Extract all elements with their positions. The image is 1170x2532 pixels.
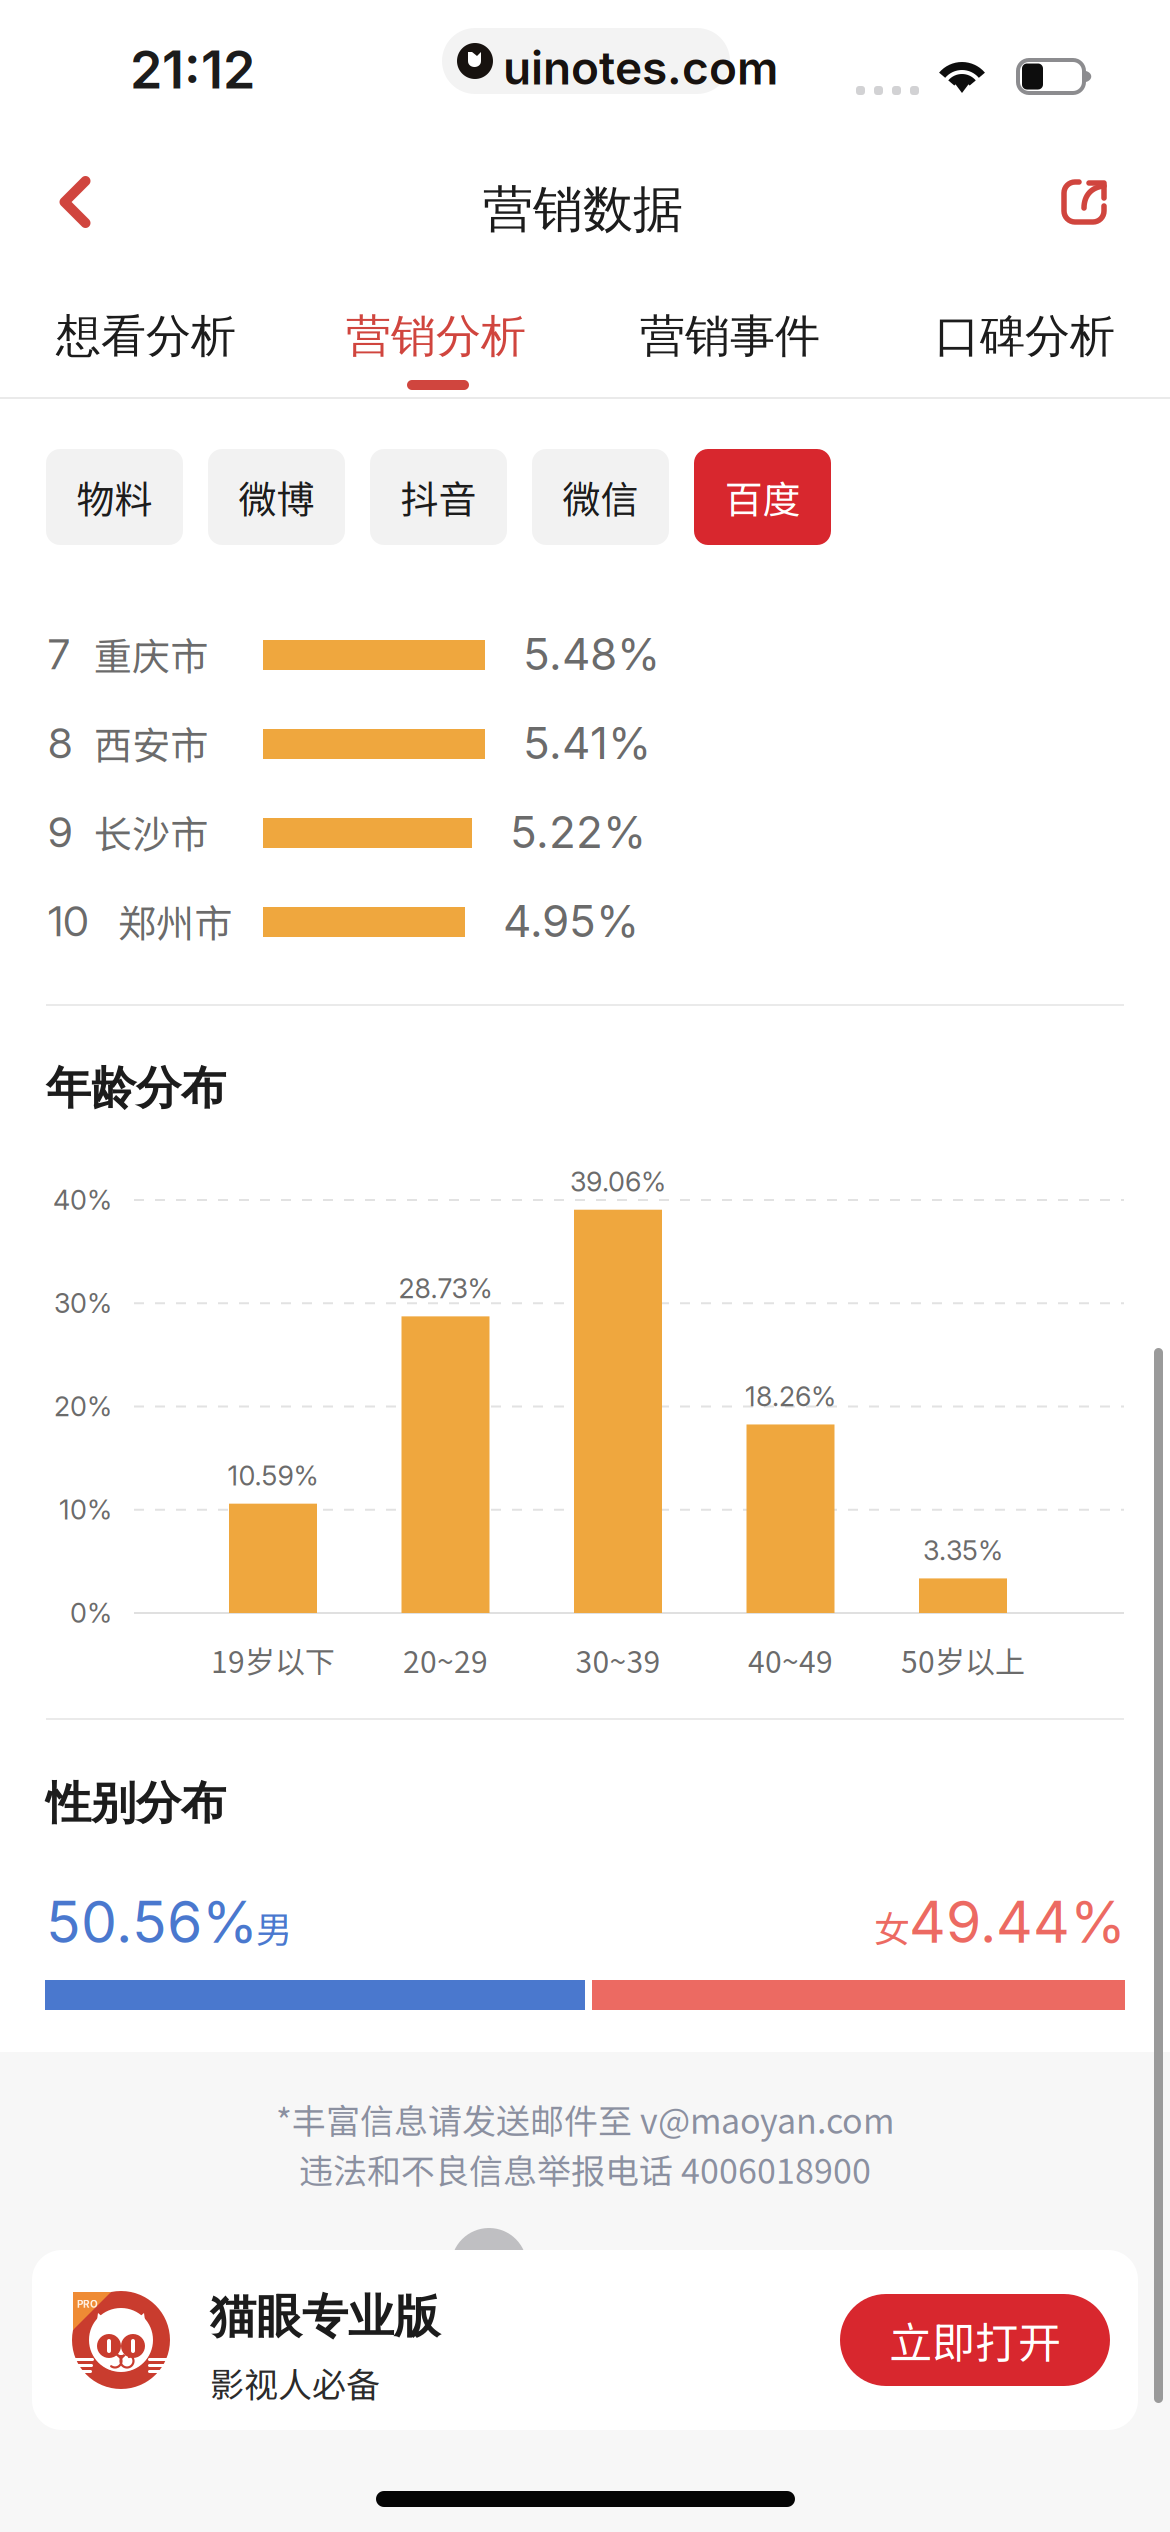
staticText: 郑州市 [118,893,232,948]
staticText: 女 [874,1901,910,1953]
staticText: 3.35% [923,1534,1003,1567]
staticText: 18.26% [745,1380,836,1413]
button[interactable]: 营销分析 [343,288,539,418]
staticText: 5.22% [510,805,646,859]
button[interactable]: Back [10,142,140,262]
staticText: 抖音 [400,469,476,524]
staticText: 19岁以下 [211,1638,335,1682]
staticText: 5.48% [523,627,660,681]
staticText: 20% [54,1390,112,1423]
staticText: 想看分析 [56,308,236,365]
button[interactable]: PRO [32,2250,1138,2430]
button[interactable]: 营销事件 [637,288,833,418]
staticText: 7 [48,629,70,679]
staticText: 物料 [76,469,152,524]
staticText: 男 [256,1901,292,1953]
staticText: 10 [48,896,89,946]
staticText: 营销分析 [346,308,526,365]
staticText: 年龄分布 [46,1060,226,1117]
button[interactable]: 微信 [532,449,669,545]
staticText: uinotes.com [503,40,778,96]
staticText: 28.73% [398,1272,492,1305]
staticText: 重庆市 [94,626,208,681]
staticText: 10% [59,1493,112,1526]
staticText: 口碑分析 [935,308,1115,365]
staticText: 5.41% [523,716,651,770]
staticText: 40% [53,1184,112,1216]
staticText: 39.06% [570,1165,666,1198]
staticText: 百度 [724,469,800,524]
staticText: 立即打开 [889,2309,1061,2371]
staticText: 8 [48,718,72,768]
staticText: 40~49 [748,1638,833,1682]
staticText: PRO [77,2298,98,2310]
staticText: 9 [48,807,73,857]
staticText: 50岁以上 [901,1638,1025,1682]
staticText: 猫眼专业版 [210,2288,440,2346]
staticText: 营销事件 [640,308,820,365]
staticText: 微信 [562,469,638,524]
button[interactable]: 百度 [694,449,831,545]
staticText: 西安市 [94,715,208,770]
staticText: 4.95% [503,894,639,948]
button[interactable]: 物料 [46,449,183,545]
staticText: 性别分布 [46,1775,226,1832]
staticText: 10.59% [227,1459,318,1492]
staticText: 影视人必备 [210,2358,380,2407]
staticText: 21:12 [130,38,255,101]
staticText: 长沙市 [94,804,208,859]
button[interactable]: 抖音 [370,449,507,545]
staticText: 50.56% [46,1887,258,1956]
staticText: *丰富信息请发送邮件至 v@maoyan.com [276,2094,894,2144]
staticText: 30% [54,1287,112,1320]
staticText: 20~29 [403,1638,488,1682]
staticText: 违法和不良信息举报电话 4006018900 [299,2144,871,2194]
button[interactable]: Share [1024,142,1144,262]
button[interactable]: 想看分析 [53,288,249,418]
staticText: 0% [70,1597,112,1629]
button[interactable]: 口碑分析 [932,288,1128,418]
staticText: 49.44% [909,1887,1126,1956]
staticText: 30~39 [575,1638,660,1682]
staticText: 营销数据 [483,178,683,241]
staticText: 微博 [238,469,314,524]
button[interactable]: 微博 [208,449,345,545]
